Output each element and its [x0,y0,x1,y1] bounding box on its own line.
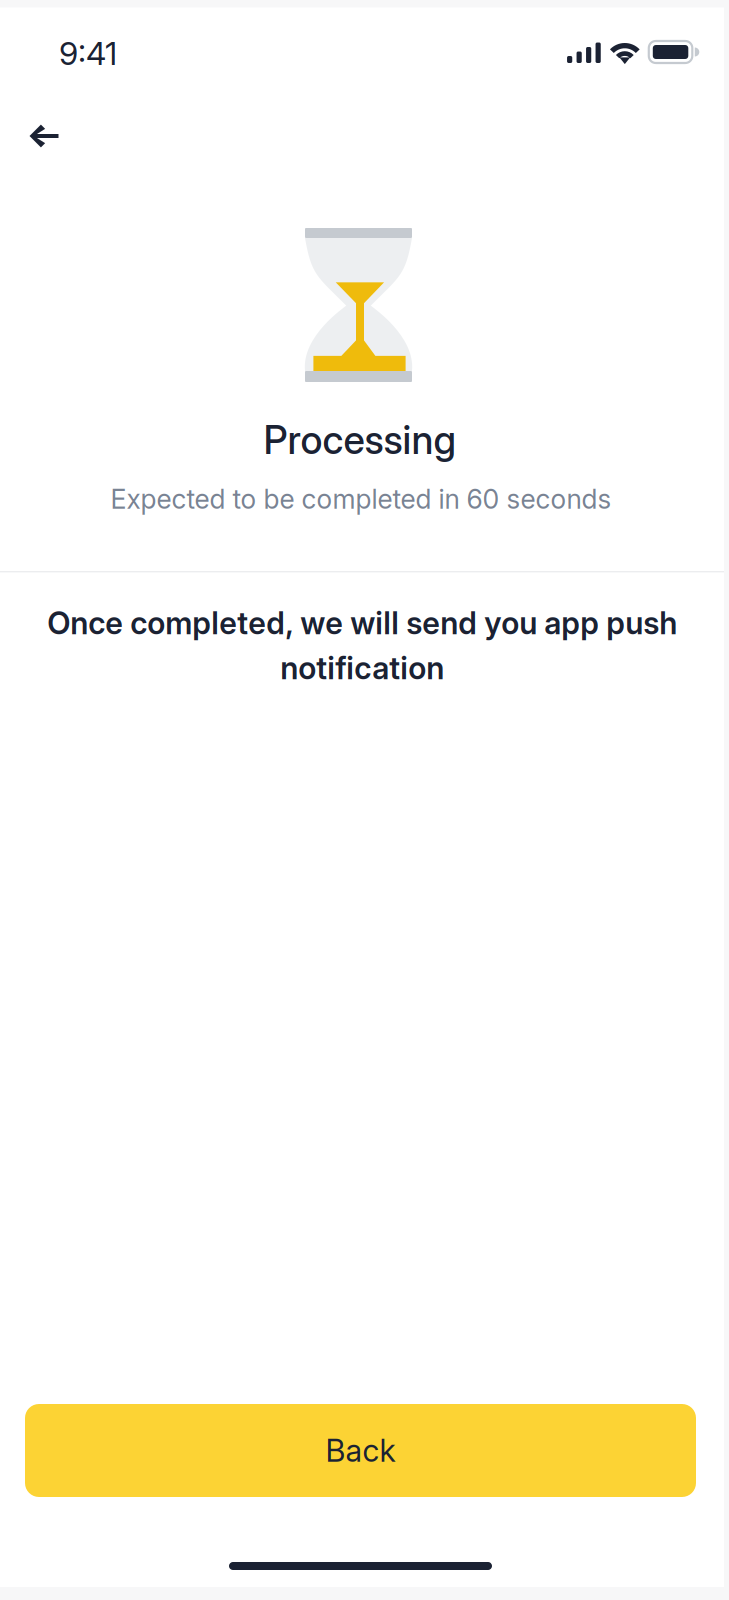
button[interactable]: Back [25,1404,696,1497]
staticText: Expected to be completed in 60 seconds [110,483,611,515]
staticText: 9:41 [59,34,117,73]
staticText: Once completed, we will send you app pus… [47,604,677,687]
button[interactable]: Back [14,106,74,166]
staticText: Back [325,1432,395,1469]
staticText: Processing [263,416,456,463]
